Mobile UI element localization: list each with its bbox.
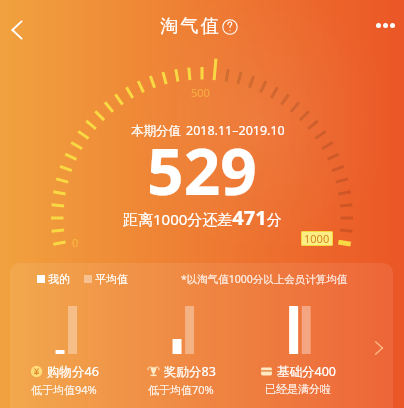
staticText: 500 — [191, 85, 210, 100]
staticText: 低于均值94% — [31, 382, 97, 397]
staticText: 0 — [72, 235, 79, 250]
staticText: 已经是满分啦 — [265, 382, 331, 396]
staticText: 2018.11–2019.10 — [186, 122, 285, 139]
staticText: 购物分46 — [47, 363, 99, 380]
button[interactable]: 基础分400 — [238, 363, 358, 396]
staticText: 本期分值 — [131, 123, 181, 139]
button[interactable]: More options — [360, 4, 404, 48]
button[interactable]: Details — [368, 337, 390, 359]
staticText: 529 — [147, 127, 257, 214]
staticText: 1000 — [304, 231, 330, 246]
staticText: *以淘气值1000分以上会员计算均值 — [181, 272, 348, 286]
staticText: 距离1000分还差471分 — [123, 204, 282, 231]
staticText: 淘气值 — [160, 15, 222, 38]
button[interactable]: Back — [0, 4, 44, 48]
staticText: 奖励分83 — [164, 363, 216, 380]
button[interactable]: 购物分46 — [4, 363, 124, 397]
staticText: 平均值 — [95, 272, 128, 286]
staticText: 我的 — [48, 272, 70, 286]
staticText: 低于均值70% — [148, 382, 214, 397]
button[interactable]: 我的 — [10, 263, 393, 408]
staticText: 基础分400 — [277, 363, 336, 380]
button[interactable]: 奖励分83 — [121, 363, 241, 397]
